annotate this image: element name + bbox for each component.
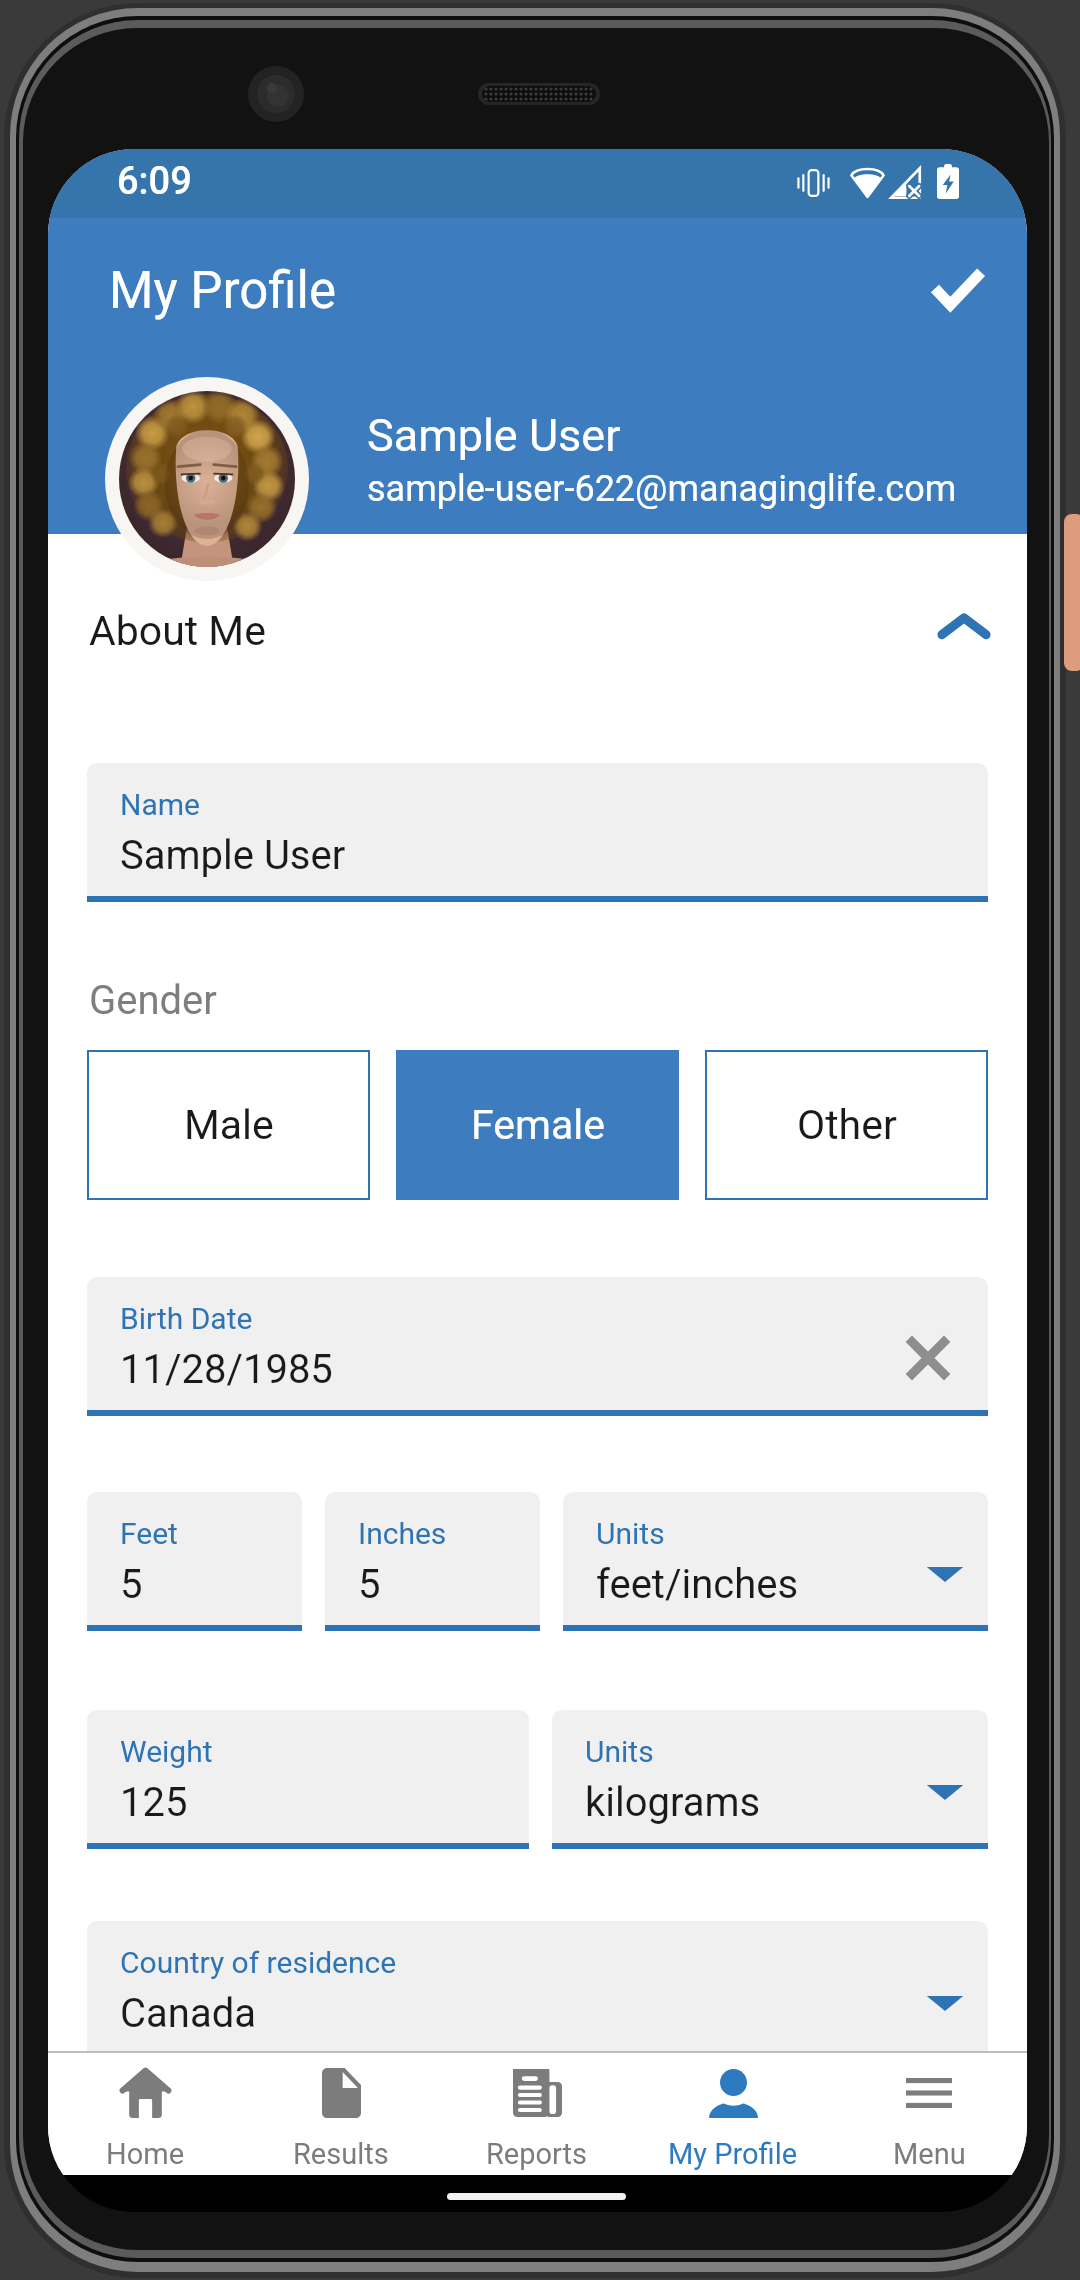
staticText: 5 xyxy=(358,1561,381,1608)
button[interactable]: Weight xyxy=(87,1710,529,1843)
staticText: Country of residence xyxy=(120,1945,397,1980)
button[interactable]: About Me xyxy=(48,579,1027,675)
staticText: Results xyxy=(293,2137,389,2171)
button[interactable]: Country of residence xyxy=(87,1921,988,2054)
staticText: Female xyxy=(471,1101,605,1149)
button[interactable]: Menu xyxy=(831,2051,1027,2175)
staticText: About Me xyxy=(89,607,266,655)
button[interactable]: Name xyxy=(87,763,988,896)
staticText: Name xyxy=(120,787,200,822)
button[interactable]: Birth Date xyxy=(87,1277,988,1410)
staticText: 6:09 xyxy=(117,159,192,204)
staticText: kilograms xyxy=(585,1779,761,1826)
staticText: Inches xyxy=(358,1516,447,1551)
staticText: feet/inches xyxy=(596,1561,799,1608)
button[interactable]: Female xyxy=(396,1050,679,1200)
staticText: Canada xyxy=(120,1990,256,2037)
staticText: sample-user-622@managinglife.com xyxy=(367,468,957,510)
staticText: Feet xyxy=(120,1516,178,1551)
staticText: My Profile xyxy=(668,2137,798,2171)
button[interactable]: Units xyxy=(552,1710,988,1843)
staticText: Birth Date xyxy=(120,1301,253,1336)
staticText: Other xyxy=(797,1101,897,1149)
staticText: 11/28/1985 xyxy=(120,1346,333,1393)
staticText: Gender xyxy=(89,977,217,1024)
button[interactable]: Profile photo xyxy=(105,377,309,581)
button[interactable]: Results xyxy=(243,2051,439,2175)
staticText: Units xyxy=(585,1734,654,1769)
staticText: Reports xyxy=(486,2137,588,2171)
staticText: 5 xyxy=(120,1561,143,1608)
button[interactable]: Home xyxy=(48,2051,243,2175)
staticText: Home xyxy=(106,2137,185,2171)
staticText: 125 xyxy=(120,1779,188,1826)
button[interactable]: My Profile xyxy=(635,2051,831,2175)
staticText: Male xyxy=(184,1101,274,1149)
staticText: My Profile xyxy=(109,261,337,321)
staticText: Sample User xyxy=(367,409,621,462)
button[interactable]: Feet xyxy=(87,1492,302,1625)
button[interactable]: Save profile xyxy=(910,240,1006,336)
button[interactable]: Inches xyxy=(325,1492,540,1625)
button[interactable]: Reports xyxy=(439,2051,635,2175)
button[interactable]: Clear birth date xyxy=(892,1322,964,1394)
button[interactable]: Male xyxy=(87,1050,370,1200)
button[interactable]: Other xyxy=(705,1050,988,1200)
staticText: Weight xyxy=(120,1734,213,1769)
button[interactable]: Units xyxy=(563,1492,988,1625)
staticText: Units xyxy=(596,1516,665,1551)
staticText: Menu xyxy=(893,2137,966,2171)
staticText: Sample User xyxy=(120,832,346,879)
